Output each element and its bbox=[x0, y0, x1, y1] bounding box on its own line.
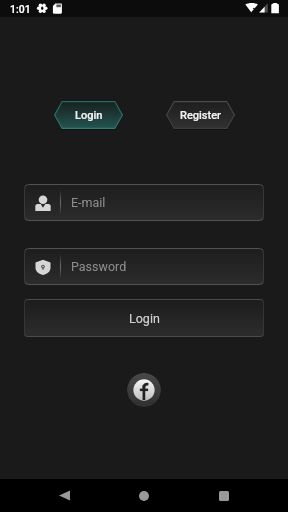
staticText: Register bbox=[180, 109, 221, 122]
staticText: 1:01 bbox=[10, 3, 31, 15]
button[interactable]: Password bbox=[24, 248, 264, 285]
staticText: Login bbox=[75, 109, 103, 122]
staticText: Login bbox=[129, 311, 160, 326]
staticText: E-mail bbox=[71, 195, 106, 210]
button[interactable]: Sign in with Facebook bbox=[127, 373, 161, 407]
staticText: Password bbox=[71, 259, 127, 274]
button[interactable]: Register bbox=[166, 101, 235, 129]
button[interactable]: Back bbox=[42, 479, 86, 512]
button[interactable]: Home bbox=[122, 479, 166, 512]
button[interactable]: Recent apps bbox=[202, 479, 246, 512]
button[interactable]: E-mail bbox=[24, 184, 264, 221]
button[interactable]: Login bbox=[24, 299, 264, 337]
button[interactable]: Login bbox=[54, 101, 123, 129]
